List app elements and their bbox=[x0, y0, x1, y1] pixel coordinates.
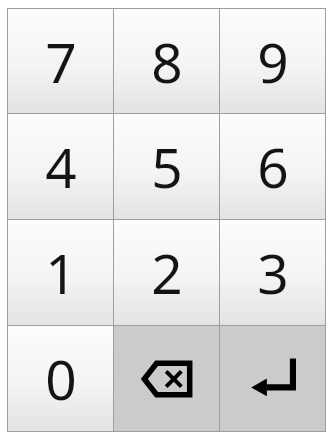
button[interactable]: 3 bbox=[220, 220, 325, 325]
button[interactable]: 6 bbox=[220, 114, 325, 219]
button[interactable]: 8 bbox=[114, 9, 219, 113]
staticText: 4 bbox=[45, 129, 77, 204]
staticText: 8 bbox=[151, 24, 183, 99]
button[interactable]: Backspace bbox=[114, 326, 219, 431]
button[interactable]: 2 bbox=[114, 220, 219, 325]
button[interactable]: Enter bbox=[220, 326, 325, 431]
staticText: 2 bbox=[151, 235, 183, 310]
staticText: 1 bbox=[45, 235, 77, 310]
staticText: 6 bbox=[257, 129, 289, 204]
staticText: 9 bbox=[257, 24, 289, 99]
button[interactable]: 5 bbox=[114, 114, 219, 219]
button[interactable]: 0 bbox=[8, 326, 113, 431]
staticText: 7 bbox=[45, 24, 77, 99]
button[interactable]: 7 bbox=[8, 9, 113, 113]
button[interactable]: 1 bbox=[8, 220, 113, 325]
button[interactable]: 9 bbox=[220, 9, 325, 113]
staticText: 5 bbox=[151, 129, 183, 204]
staticText: 3 bbox=[257, 235, 289, 310]
staticText: 0 bbox=[45, 341, 77, 416]
button[interactable]: 4 bbox=[8, 114, 113, 219]
